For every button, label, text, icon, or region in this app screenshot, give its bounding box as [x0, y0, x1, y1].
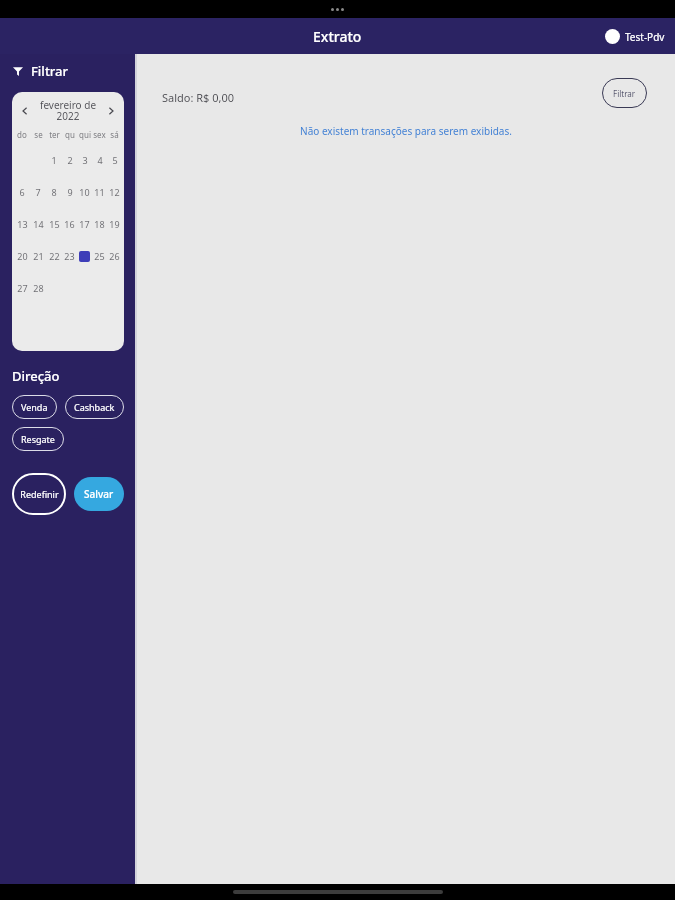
button[interactable]: 24 — [79, 251, 90, 262]
button[interactable]: 21 — [33, 250, 44, 262]
button[interactable]: 28 — [33, 282, 44, 294]
staticText: Cashback — [74, 401, 115, 413]
button[interactable]: 17 — [79, 218, 90, 230]
button[interactable]: Cashback — [65, 395, 124, 419]
button[interactable]: 14 — [33, 218, 44, 230]
staticText: Venda — [21, 401, 48, 413]
button[interactable]: 4 — [97, 154, 103, 166]
staticText: se — [34, 129, 43, 140]
staticText: qu — [65, 129, 75, 140]
staticText: fevereiro de 2022 — [34, 98, 102, 123]
staticText: Resgate — [21, 433, 55, 445]
button[interactable]: 22 — [49, 250, 60, 262]
button[interactable]: 25 — [94, 250, 105, 262]
button[interactable]: 26 — [109, 250, 120, 262]
button[interactable]: 13 — [17, 218, 28, 230]
button[interactable]: 20 — [17, 250, 28, 262]
button[interactable]: 9 — [67, 186, 73, 198]
button[interactable]: 11 — [94, 186, 105, 198]
staticText: Test-Pdv — [625, 30, 665, 44]
button[interactable]: Salvar — [74, 477, 124, 511]
button[interactable]: Account Test-Pdv — [605, 29, 665, 44]
staticText: Não existem transações para serem exibid… — [137, 124, 675, 138]
button[interactable]: 8 — [51, 186, 57, 198]
button[interactable]: 27 — [17, 282, 28, 294]
staticText: Filtrar — [31, 62, 69, 80]
staticText: sex — [93, 129, 106, 140]
button[interactable]: Redefinir — [12, 473, 66, 515]
button[interactable]: 6 — [19, 186, 25, 198]
staticText: Extrato — [313, 27, 362, 46]
staticText: sá — [110, 129, 119, 140]
button[interactable]: 23 — [64, 250, 75, 262]
staticText: Direção — [12, 367, 60, 385]
button[interactable]: Venda — [12, 395, 57, 419]
button[interactable]: Filtrar — [602, 78, 647, 108]
staticText: qui — [79, 129, 91, 140]
button[interactable]: 16 — [64, 218, 75, 230]
staticText: do — [17, 129, 27, 140]
staticText: Saldo: R$ 0,00 — [162, 90, 235, 105]
button[interactable]: 7 — [35, 186, 41, 198]
button[interactable]: Next month — [102, 102, 120, 120]
button[interactable]: 3 — [82, 154, 88, 166]
staticText: ter — [49, 129, 60, 140]
button[interactable]: 1 — [51, 154, 57, 166]
button[interactable]: 18 — [94, 218, 105, 230]
staticText: Redefinir — [20, 488, 59, 500]
button[interactable]: 12 — [109, 186, 120, 198]
staticText: Salvar — [84, 487, 114, 501]
button[interactable]: 10 — [79, 186, 90, 198]
button[interactable]: 19 — [109, 218, 120, 230]
button[interactable]: 15 — [49, 218, 60, 230]
staticText: Filtrar — [613, 88, 636, 99]
button[interactable]: Resgate — [12, 427, 64, 451]
button[interactable]: 2 — [67, 154, 73, 166]
button[interactable]: Filtrar — [12, 62, 69, 80]
button[interactable]: Previous month — [16, 102, 34, 120]
button[interactable]: 5 — [112, 154, 118, 166]
